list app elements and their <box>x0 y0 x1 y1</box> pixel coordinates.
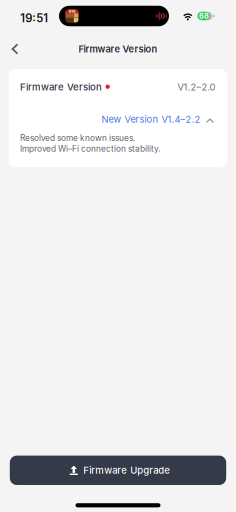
staticText: V1.2–2.0 <box>177 81 215 93</box>
staticText: Firmware Version <box>78 43 157 55</box>
staticText: BTS <box>69 9 75 14</box>
staticText: Resolved some known issues. <box>20 133 135 143</box>
staticText: Improved Wi–Fi connection stability. <box>20 144 160 154</box>
staticText: Firmware Version <box>20 81 102 93</box>
staticText: 19:51 <box>20 11 48 25</box>
button[interactable]: New Version V1.4–2.2 <box>9 93 227 125</box>
staticText: Firmware Upgrade <box>83 464 170 476</box>
staticText: New Version V1.4–2.2 <box>101 114 200 125</box>
button[interactable]: Back <box>2 36 28 62</box>
button[interactable]: Firmware Upgrade <box>0 456 236 485</box>
staticText: 68 <box>199 11 209 20</box>
